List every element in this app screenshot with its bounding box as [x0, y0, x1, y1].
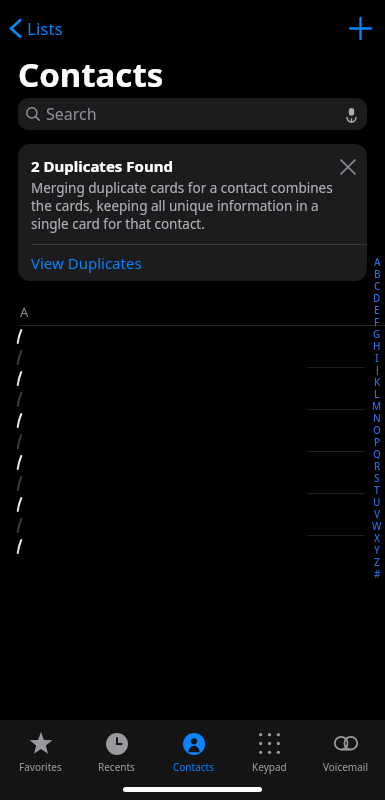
button[interactable]: Favorites [4, 728, 76, 776]
staticText: Search [46, 103, 97, 125]
staticText: A [374, 255, 381, 267]
staticText: V [374, 507, 381, 519]
button[interactable] [0, 536, 385, 557]
staticText: C [374, 279, 381, 291]
button[interactable] [0, 515, 385, 536]
button[interactable]: Lists [0, 13, 73, 44]
button[interactable] [0, 452, 385, 473]
staticText: W [372, 519, 382, 531]
staticText: Recents [98, 760, 135, 774]
staticText: 2 Duplicates Found [31, 156, 173, 176]
button[interactable] [0, 494, 385, 515]
button[interactable]: View Duplicates [18, 245, 367, 281]
staticText: Lists [27, 17, 63, 40]
button[interactable] [0, 431, 385, 452]
staticText: E [374, 303, 380, 315]
staticText: M [372, 399, 382, 411]
button[interactable] [0, 389, 385, 410]
button[interactable]: Add contact [336, 8, 385, 49]
button[interactable]: Search [18, 98, 367, 130]
staticText: H [373, 339, 381, 351]
button[interactable]: Contacts [157, 728, 229, 776]
staticText: Y [374, 543, 380, 555]
staticText: O [373, 423, 381, 435]
staticText: D [373, 291, 381, 303]
button[interactable] [0, 347, 385, 368]
staticText: Merging duplicate cards for a contact co… [31, 179, 337, 233]
staticText: P [374, 435, 381, 447]
staticText: I [375, 351, 379, 363]
staticText: Contacts [173, 760, 214, 774]
staticText: Q [373, 447, 381, 459]
button[interactable] [0, 410, 385, 431]
staticText: Contacts [18, 52, 164, 92]
staticText: L [374, 387, 380, 399]
staticText: Voicemail [323, 760, 368, 774]
button[interactable] [0, 368, 385, 389]
button[interactable]: Dismiss [337, 156, 359, 178]
staticText: U [373, 495, 381, 507]
staticText: Favorites [19, 760, 62, 774]
staticText: B [374, 267, 381, 279]
button[interactable]: Voicemail [309, 728, 381, 776]
staticText: K [374, 375, 381, 387]
staticText: Z [374, 555, 380, 567]
staticText: S [374, 471, 380, 483]
staticText: # [374, 567, 381, 579]
button[interactable]: Recents [80, 728, 152, 776]
staticText: J [376, 363, 379, 375]
staticText: N [373, 411, 381, 423]
staticText: R [374, 459, 381, 471]
staticText: G [373, 327, 381, 339]
staticText: T [374, 483, 380, 495]
staticText: Keypad [252, 760, 287, 774]
staticText: X [374, 531, 381, 543]
staticText: F [374, 315, 380, 327]
button[interactable] [0, 326, 385, 347]
button[interactable]: Alphabet index [369, 255, 385, 579]
button[interactable]: Keypad [233, 728, 305, 776]
staticText: A [20, 303, 29, 321]
button[interactable] [0, 473, 385, 494]
staticText: View Duplicates [31, 253, 142, 273]
